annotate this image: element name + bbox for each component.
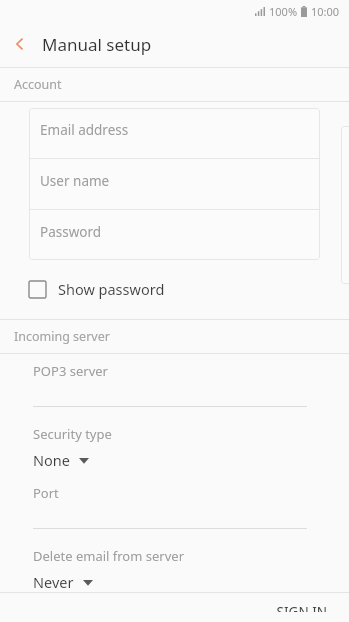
button[interactable]: Password bbox=[29, 210, 320, 260]
staticText: 10:00 bbox=[311, 4, 340, 19]
staticText: Never bbox=[33, 572, 74, 592]
button[interactable]: Port bbox=[0, 484, 349, 529]
staticText: User name bbox=[40, 172, 110, 190]
staticText: POP3 server bbox=[33, 362, 108, 380]
button[interactable]: SIGN IN bbox=[254, 593, 349, 622]
staticText: SIGN IN bbox=[276, 603, 327, 612]
staticText: 100% bbox=[269, 4, 298, 19]
button[interactable]: POP3 server bbox=[0, 362, 349, 407]
staticText: Delete email from server bbox=[33, 547, 184, 565]
staticText: Show password bbox=[58, 279, 165, 299]
button[interactable]: Delete email from server bbox=[0, 547, 349, 592]
staticText: None bbox=[33, 450, 70, 470]
staticText: Account bbox=[14, 76, 62, 93]
button[interactable]: Email address bbox=[29, 108, 320, 158]
staticText: Incoming server bbox=[14, 328, 110, 345]
staticText: Manual setup bbox=[42, 33, 152, 56]
staticText: Password bbox=[40, 223, 102, 241]
staticText: Port bbox=[33, 484, 59, 502]
button[interactable]: Back bbox=[0, 24, 40, 64]
staticText: Email address bbox=[40, 121, 129, 139]
button[interactable]: User name bbox=[29, 159, 320, 209]
button[interactable]: Security type bbox=[0, 425, 349, 470]
staticText: Security type bbox=[33, 425, 112, 443]
button[interactable]: Show password bbox=[29, 279, 165, 299]
